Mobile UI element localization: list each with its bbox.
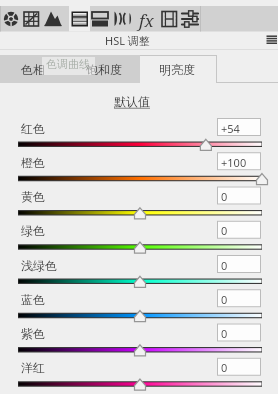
button[interactable] [217,324,261,342]
staticText: +100 [221,155,247,170]
staticText: 明亮度 [159,62,195,77]
staticText: 色调曲线 [46,57,90,71]
staticText: 红色 [21,121,45,136]
button[interactable] [217,118,261,136]
button[interactable] [18,171,262,187]
staticText: 0 [221,258,228,273]
staticText: 0 [221,223,228,238]
staticText: 黄色 [21,189,45,204]
button[interactable] [217,187,261,205]
button[interactable] [217,255,261,273]
button[interactable] [217,358,261,376]
button[interactable] [18,239,262,255]
button[interactable]: Histogram [42,6,63,31]
staticText: 绿色 [21,223,45,238]
staticText: 0 [221,360,228,375]
button[interactable]: Effects [135,6,156,31]
staticText: 浅绿色 [21,258,57,273]
button[interactable] [18,205,262,221]
staticText: 色相 [21,62,45,77]
button[interactable]: Before after [112,6,133,31]
button[interactable] [18,342,262,358]
staticText: fx [139,9,154,32]
button[interactable]: Filmstrip [159,6,180,31]
staticText: +54 [221,121,240,136]
button[interactable] [18,308,262,324]
button[interactable]: Gradient [69,6,90,31]
staticText: HSL 调整 [105,33,150,48]
staticText: 0 [221,189,228,204]
button[interactable] [112,94,154,109]
staticText: 蓝色 [21,292,45,307]
button[interactable] [0,55,66,83]
button[interactable] [217,152,261,170]
staticText: 紫色 [21,326,45,341]
button[interactable] [18,137,262,153]
staticText: 饱和度 [86,62,122,77]
staticText: 默认值 [114,94,150,109]
staticText: 0 [221,292,228,307]
staticText: 0 [221,326,228,341]
staticText: 洋红 [21,360,45,375]
button[interactable] [140,55,216,83]
button[interactable] [18,274,262,290]
button[interactable]: Layout [89,6,110,31]
button[interactable] [217,221,261,239]
button[interactable]: Adjustments [180,6,201,31]
button[interactable] [66,55,140,83]
button[interactable]: Grid [21,6,42,31]
button[interactable]: Panel menu [262,32,278,48]
button[interactable] [18,376,262,392]
button[interactable] [217,289,261,307]
staticText: 橙色 [21,155,45,170]
button[interactable]: Aperture [1,6,22,31]
